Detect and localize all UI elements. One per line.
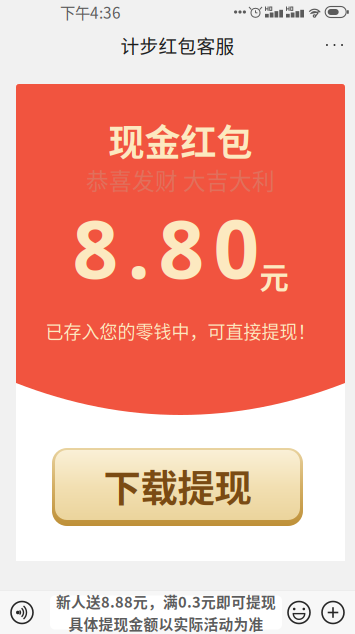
button[interactable]: Emoji [282,591,316,634]
staticText: 已存入您的零钱中，可直接提现！ [45,318,315,344]
staticText: 计步红包客服 [120,31,234,58]
staticText: 恭喜发财 大吉大利 [86,163,275,196]
button[interactable]: More options [316,591,350,634]
staticText: 新人送8.88元，满0.3元即可提现 [56,591,276,612]
staticText: 8.80 [72,193,259,302]
staticText: 具体提现金额以实际活动为准 [68,613,263,634]
staticText: 元 [259,254,288,297]
button[interactable]: More [314,28,355,62]
staticText: 下午4:36 [60,1,121,23]
button[interactable]: 下载提现 [52,448,303,526]
button[interactable]: Voice message [6,591,38,634]
staticText: 现金红包 [108,114,252,166]
staticText: 下载提现 [103,459,251,513]
